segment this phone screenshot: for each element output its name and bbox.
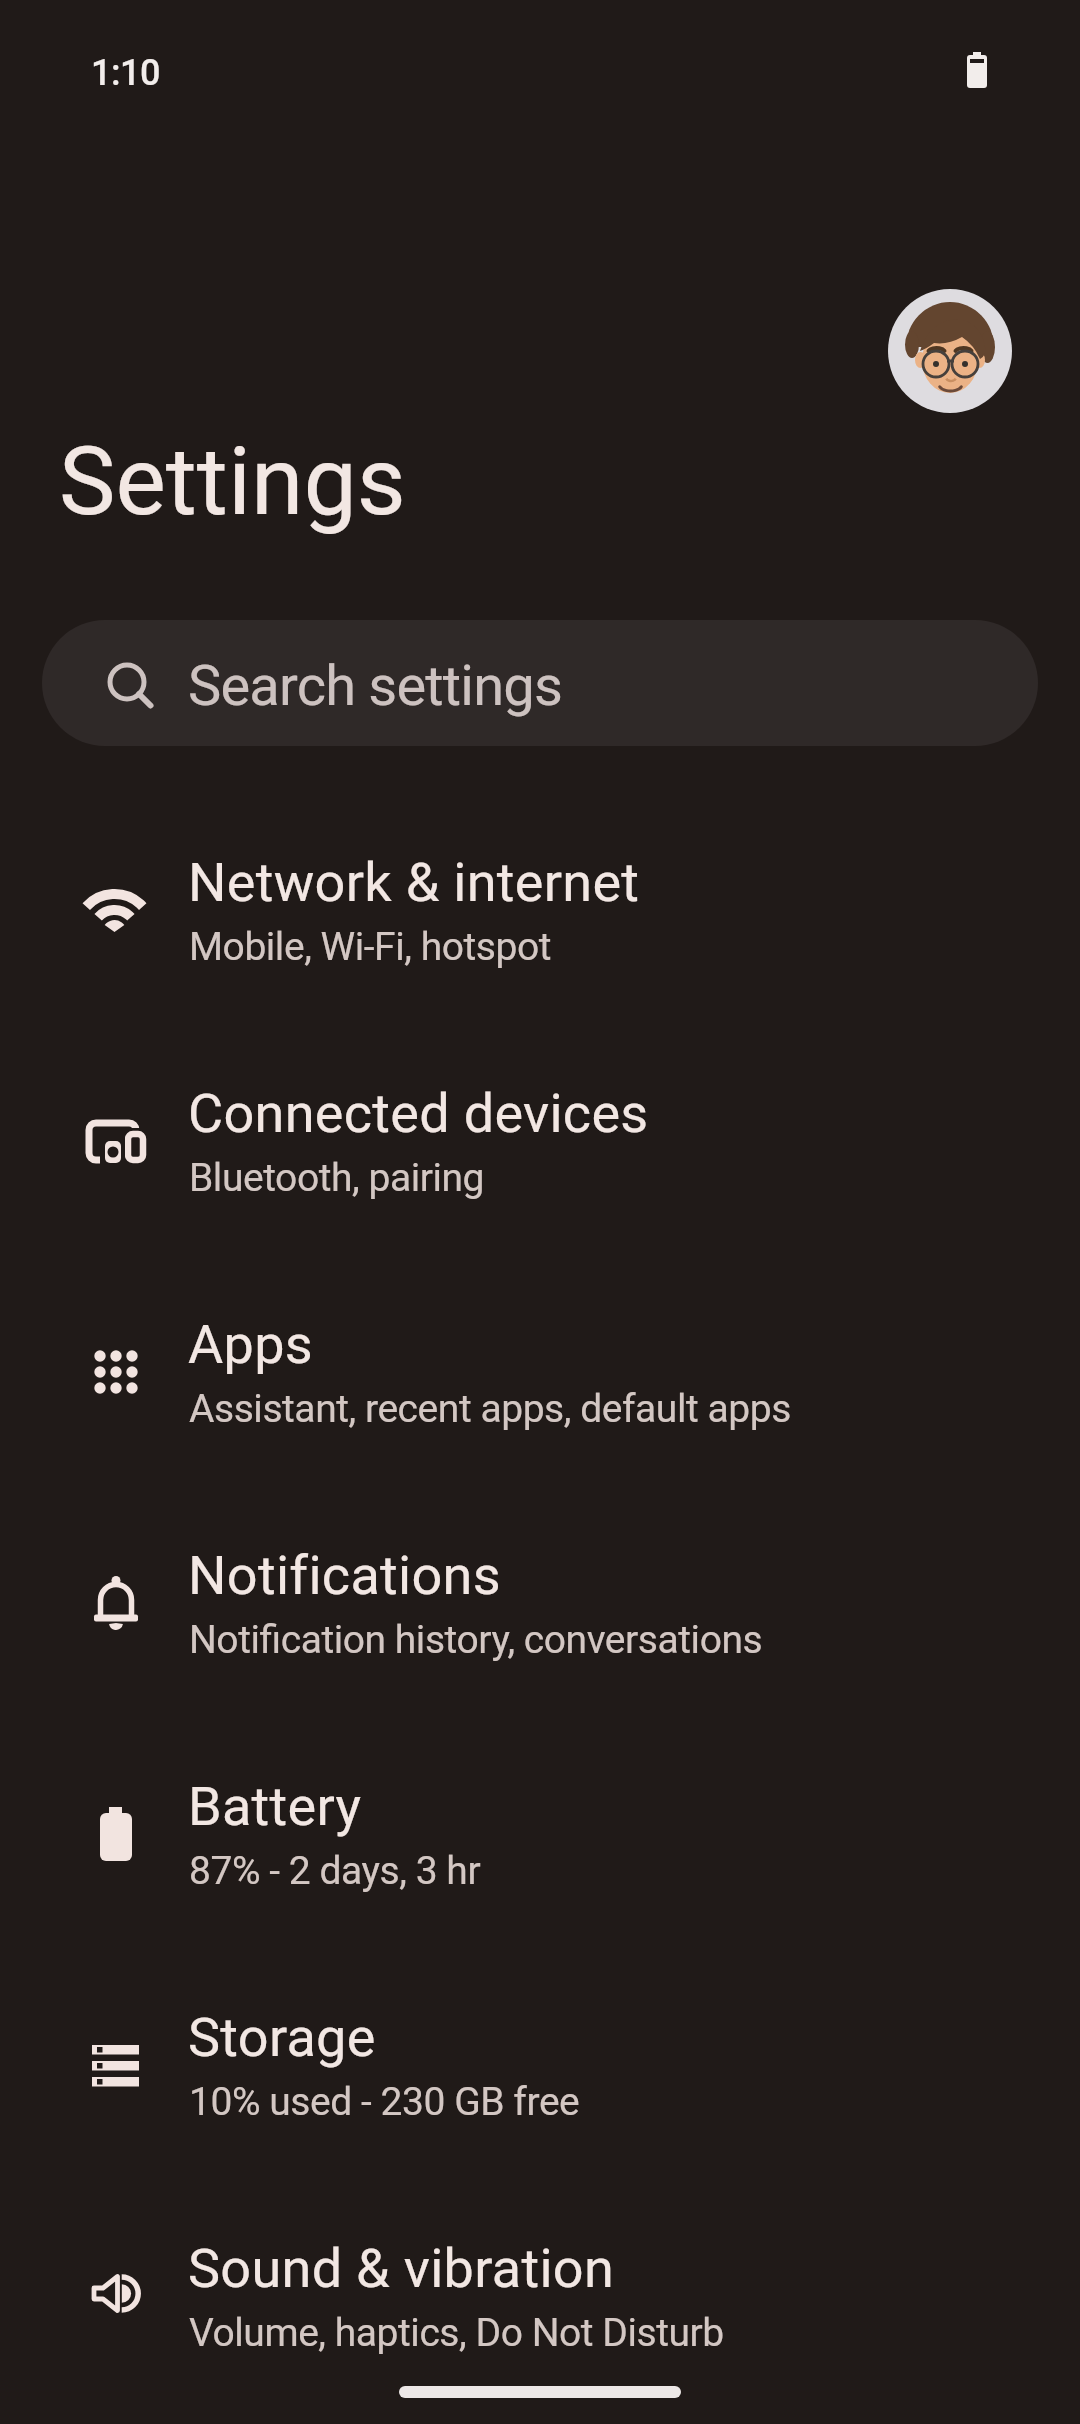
button[interactable]: Sound & vibration [0,2152,1080,2383]
staticText: Network & internet [188,851,640,914]
staticText: Volume, haptics, Do Not Disturb [189,2310,724,2356]
staticText: Mobile, Wi-Fi, hotspot [189,924,552,970]
button[interactable]: Connected devices [0,997,1080,1228]
staticText: 87% - 2 days, 3 hr [189,1848,481,1894]
staticText: Sound & vibration [188,2237,615,2300]
button[interactable]: Apps [0,1228,1080,1459]
staticText: Search settings [188,653,563,719]
button[interactable] [888,289,1012,413]
staticText: 1:10 [91,52,160,94]
staticText: Apps [188,1313,313,1376]
button[interactable]: Notifications [0,1459,1080,1690]
staticText: Battery [188,1775,362,1838]
staticText: Bluetooth, pairing [189,1155,485,1201]
button[interactable]: Battery [0,1690,1080,1921]
staticText: 10% used - 230 GB free [189,2079,580,2125]
staticText: Notifications [188,1544,501,1607]
button[interactable]: Storage [0,1921,1080,2152]
staticText: Storage [188,2006,376,2069]
staticText: Settings [59,426,406,537]
staticText: Notification history, conversations [189,1617,763,1663]
staticText: Connected devices [188,1082,649,1145]
button[interactable]: Network & internet [0,766,1080,997]
staticText: Assistant, recent apps, default apps [189,1386,791,1432]
button[interactable]: Search settings [42,620,1038,746]
